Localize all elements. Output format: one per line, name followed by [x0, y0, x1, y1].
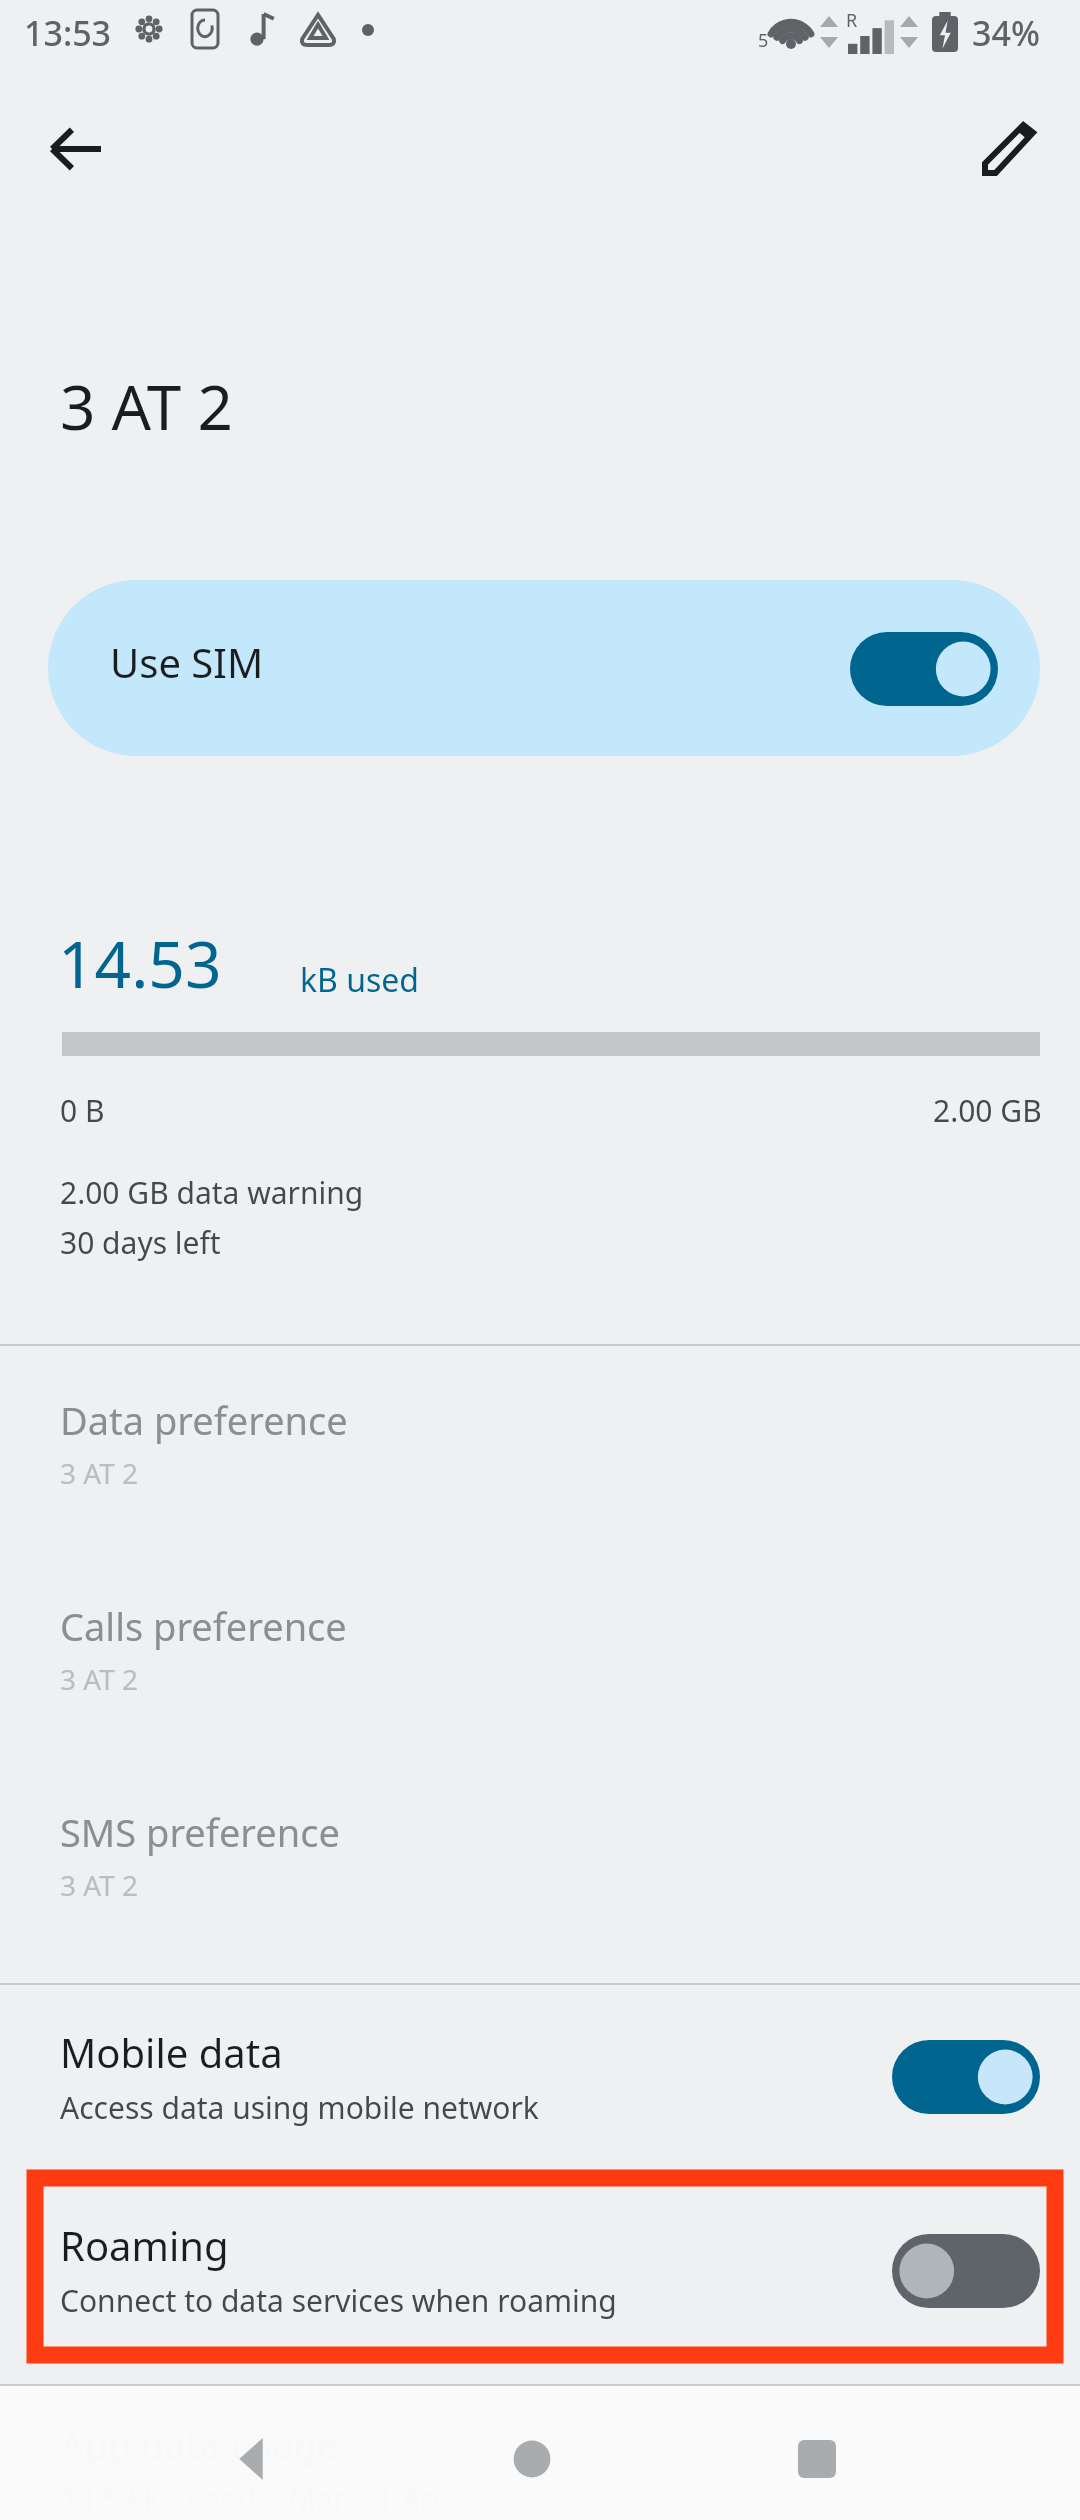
staticText: 0 B [60, 1090, 105, 1131]
staticText: Use SIM [110, 635, 264, 689]
button[interactable]: Use SIM [48, 580, 1040, 756]
staticText: 3 AT 2 [60, 1660, 139, 1698]
staticText: 3 AT 2 [60, 1866, 139, 1904]
staticText: Roaming [60, 2218, 229, 2272]
staticText: 5 [758, 28, 769, 53]
staticText: 3 AT 2 [60, 364, 233, 448]
button[interactable]: SMS preference [0, 1806, 1080, 2006]
staticText: kB used [300, 958, 420, 1002]
staticText: Calls preference [60, 1600, 347, 1652]
button[interactable]: Data preference [0, 1394, 1080, 1594]
button[interactable]: Recent apps [762, 2404, 872, 2514]
button[interactable]: Back [196, 2404, 306, 2514]
staticText: 2.00 GB data warning [60, 1172, 364, 1213]
staticText: App data usage [60, 2418, 339, 2470]
button[interactable]: Edit [956, 96, 1062, 202]
staticText: 2.00 GB [933, 1090, 1042, 1131]
button[interactable]: Calls preference [0, 1600, 1080, 1800]
staticText: 34% [972, 10, 1040, 56]
staticText: Data preference [60, 1394, 348, 1446]
staticText: Mobile data [60, 2025, 283, 2079]
button[interactable]: Back [22, 96, 128, 202]
button[interactable]: Roaming [0, 2178, 1080, 2368]
staticText: Access data using mobile network [60, 2087, 539, 2128]
button[interactable]: Mobile data [0, 1985, 1080, 2175]
staticText: SMS preference [60, 1806, 340, 1858]
staticText: 14.53 [58, 920, 222, 1007]
staticText: 3 AT 2 [60, 1454, 139, 1492]
staticText: 30 days left [60, 1222, 221, 1263]
staticText: 13:53 [24, 10, 112, 56]
staticText: Connect to data services when roaming [60, 2280, 617, 2321]
staticText: R [846, 8, 858, 33]
button[interactable]: Home [477, 2404, 587, 2514]
